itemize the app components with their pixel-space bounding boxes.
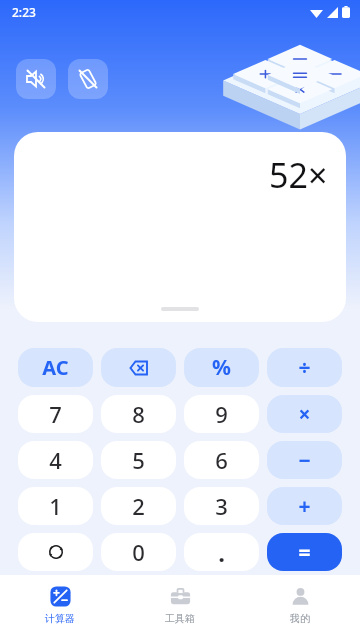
staticText: = <box>298 538 311 567</box>
staticText: 0 <box>132 537 145 567</box>
staticText: 6 <box>215 445 228 475</box>
staticText: × <box>298 400 311 429</box>
staticText: − <box>298 446 311 475</box>
button[interactable]: 2 <box>101 487 176 525</box>
staticText: 2:23 <box>12 4 36 20</box>
button[interactable]: 1 <box>18 487 93 525</box>
button[interactable]: 6 <box>184 441 259 479</box>
staticText: % <box>212 353 231 382</box>
button[interactable]: ÷ <box>267 348 342 387</box>
staticText: 4 <box>49 445 62 475</box>
button[interactable]: 5 <box>101 441 176 479</box>
staticText: 3 <box>215 491 228 521</box>
button[interactable]: . <box>184 533 259 571</box>
button[interactable]: + <box>267 487 342 525</box>
staticText: 7 <box>49 399 62 429</box>
button[interactable]: 52× <box>14 132 346 322</box>
staticText: 9 <box>215 399 228 429</box>
button[interactable]: 9 <box>184 395 259 433</box>
button[interactable]: 0 <box>101 533 176 571</box>
button[interactable]: = <box>267 533 342 571</box>
button[interactable]: 我的 <box>240 575 360 635</box>
button[interactable]: Convert <box>18 533 93 571</box>
button[interactable]: 计算器 <box>0 575 120 635</box>
staticText: 8 <box>132 399 145 429</box>
staticText: . <box>218 536 225 569</box>
button[interactable]: 3 <box>184 487 259 525</box>
staticText: 52× <box>269 152 328 198</box>
button[interactable]: × <box>267 395 342 433</box>
staticText: ÷ <box>298 353 311 382</box>
staticText: 5 <box>132 445 145 475</box>
staticText: 我的 <box>290 612 310 625</box>
staticText: 2 <box>132 491 145 521</box>
staticText: 1 <box>49 491 62 521</box>
button[interactable]: AC <box>18 348 93 387</box>
button[interactable]: − <box>267 441 342 479</box>
staticText: 工具箱 <box>165 612 195 625</box>
button[interactable]: 工具箱 <box>120 575 240 635</box>
staticText: 计算器 <box>45 612 75 625</box>
staticText: AC <box>42 354 69 381</box>
button[interactable]: Mute sound <box>16 59 56 99</box>
button[interactable]: % <box>184 348 259 387</box>
button[interactable]: 4 <box>18 441 93 479</box>
button[interactable]: 8 <box>101 395 176 433</box>
button[interactable]: 7 <box>18 395 93 433</box>
button[interactable]: Vibration off <box>68 59 108 99</box>
staticText: + <box>298 492 311 521</box>
button[interactable]: Backspace <box>101 348 176 387</box>
